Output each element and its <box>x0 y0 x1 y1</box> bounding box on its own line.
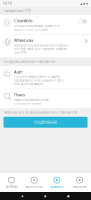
staticText: SurfShark <box>6 185 17 188</box>
staticText: ● <box>44 194 46 197</box>
button[interactable]: SurfShark <box>0 174 23 191</box>
staticText: Способы шифрования и защиты передаваемой… <box>14 75 64 86</box>
staticText: Характерист. <box>49 185 65 188</box>
staticText: Настройки <box>73 185 87 188</box>
button[interactable]: ПОДРОБНЕЕ <box>3 117 87 128</box>
staticText: ■ <box>67 194 70 197</box>
staticText: Блокировка рекламы, трекеров и вредоносн… <box>14 24 60 31</box>
button[interactable]: Настройки <box>68 174 91 191</box>
staticText: Выберите определённые приложения или веб… <box>14 44 68 54</box>
staticText: Поиск <box>14 92 25 97</box>
staticText: ПОДРОБНЕЕ <box>34 120 57 125</box>
staticText: Местополож. <box>25 185 43 188</box>
staticText: WhiteLister <box>14 38 34 43</box>
staticText: Характеристики VPN <box>3 9 30 12</box>
button[interactable]: CleanWeb <box>0 15 91 34</box>
staticText: ◀ <box>21 194 23 197</box>
button[interactable]: Характерист. <box>45 174 68 191</box>
staticText: 14:10 <box>3 2 12 5</box>
button[interactable]: Местополож. <box>23 174 46 191</box>
button[interactable]: Поиск <box>0 89 91 108</box>
staticText: Конфиденциальность и безопасность <box>3 60 54 63</box>
staticText: Настройки для конфиденциальности и безоп… <box>3 111 77 114</box>
staticText: ◢ ◆ ▰ <box>80 2 88 5</box>
staticText: Адет <box>14 69 23 74</box>
button[interactable]: WhiteLister <box>0 35 91 57</box>
button[interactable]: Адет <box>0 66 91 89</box>
staticText: CleanWeb <box>14 18 32 23</box>
staticText: Настройка режима поиска поисковой систем… <box>14 98 48 105</box>
